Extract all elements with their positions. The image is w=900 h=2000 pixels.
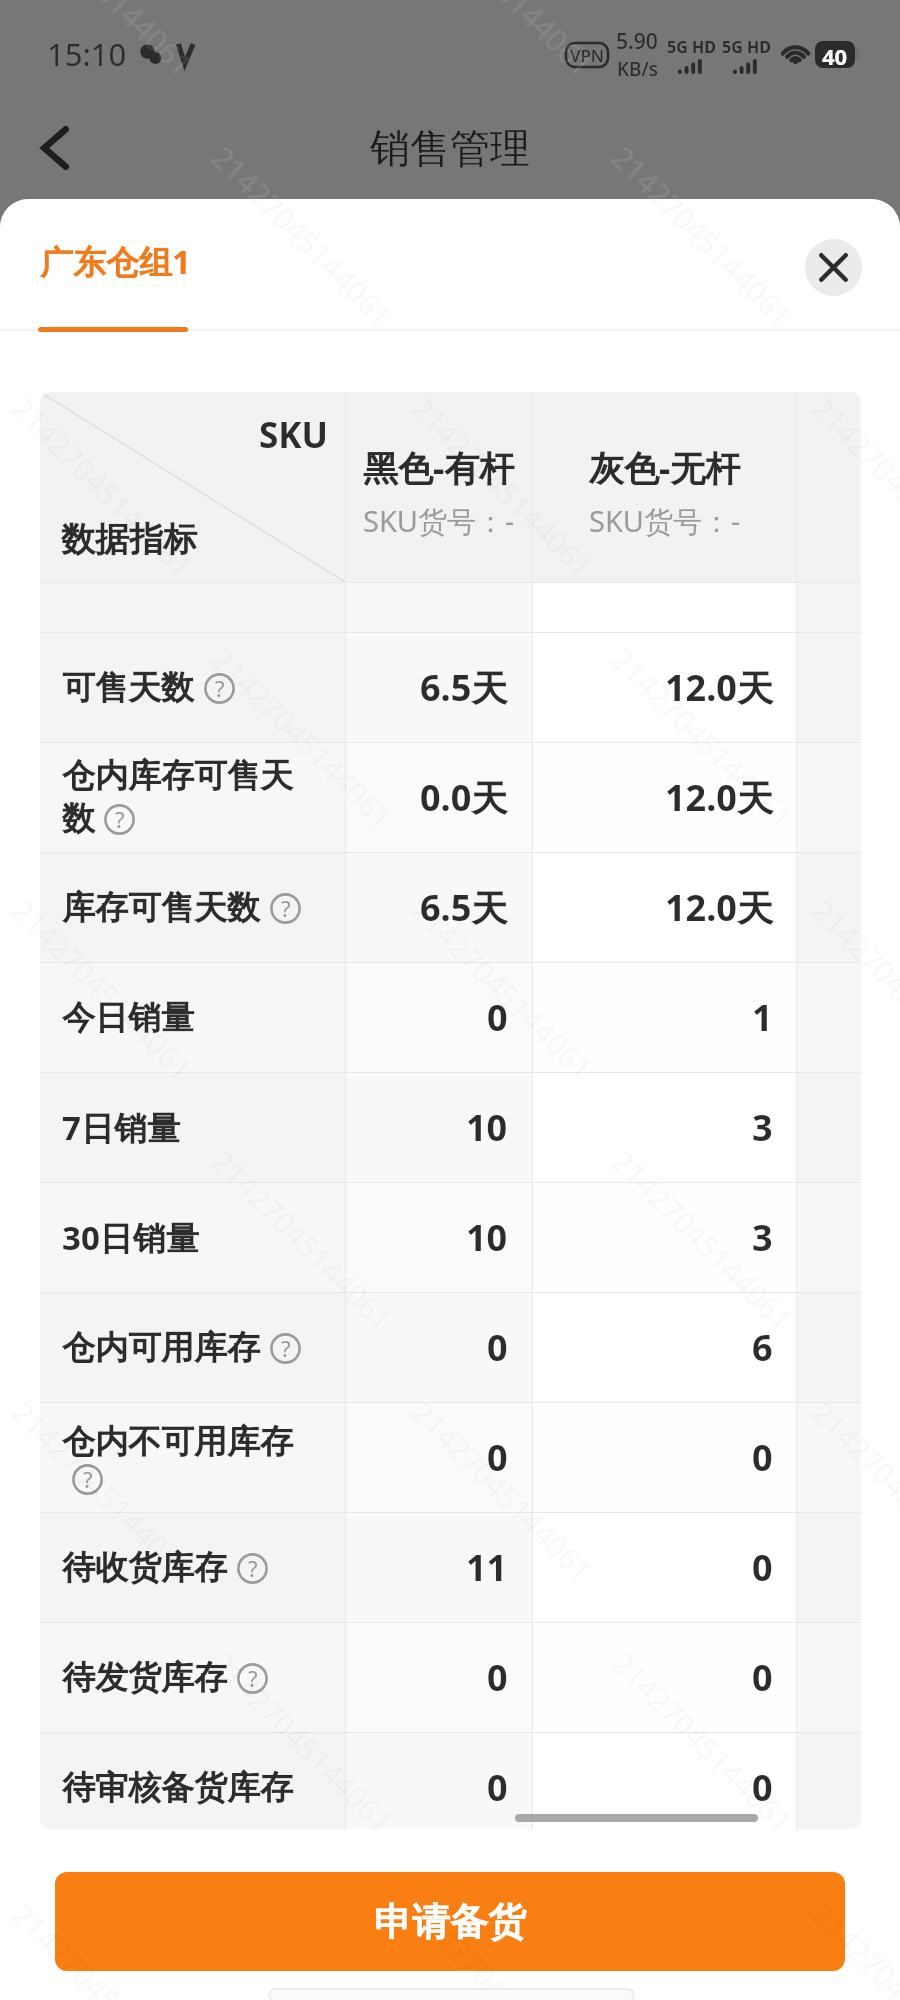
staticText: 待审核备货库存 xyxy=(62,1767,293,1809)
staticText: 7日销量 xyxy=(62,1105,180,1150)
staticText: 今日销量 xyxy=(62,997,194,1039)
staticText: 仓内可用库存 xyxy=(62,1327,260,1369)
staticText: 可售天数 xyxy=(62,667,194,709)
button[interactable]: Back xyxy=(19,112,91,184)
staticText: 40 xyxy=(822,41,848,68)
staticText: 12.0天 xyxy=(665,883,773,932)
staticText: 0 xyxy=(487,1763,508,1812)
staticText: 6.5天 xyxy=(420,663,508,712)
staticText: 0 xyxy=(487,993,508,1042)
staticText: 0 xyxy=(752,1763,773,1812)
staticText: ? xyxy=(215,673,225,703)
staticText: KB/s xyxy=(617,56,658,82)
button[interactable]: 广东仓组1 xyxy=(14,207,212,333)
staticText: 12.0天 xyxy=(665,663,773,712)
staticText: 10 xyxy=(466,1213,508,1262)
staticText: 3 xyxy=(752,1213,773,1262)
staticText: ? xyxy=(115,804,125,834)
staticText: 0.0天 xyxy=(420,773,508,822)
staticText: 12.0天 xyxy=(665,773,773,822)
staticText: 0 xyxy=(487,1433,508,1482)
staticText: 6 xyxy=(752,1323,773,1372)
staticText: 1 xyxy=(752,993,773,1042)
staticText: 销售管理 xyxy=(370,123,530,173)
staticText: 灰色-无杆 xyxy=(589,444,741,492)
staticText: 数 xyxy=(62,798,95,840)
staticText: 广东仓组1 xyxy=(40,239,191,284)
staticText: VPN xyxy=(570,44,605,67)
staticText: 库存可售天数 xyxy=(62,887,260,929)
staticText: 待发货库存 xyxy=(62,1657,227,1699)
staticText: 仓内不可用库存 xyxy=(62,1421,293,1463)
staticText: SKU货号：- xyxy=(589,501,741,541)
staticText: ? xyxy=(248,1553,258,1583)
staticText: 10 xyxy=(466,1103,508,1152)
button[interactable]: 申请备货 xyxy=(55,1872,845,1971)
staticText: 5G HD xyxy=(667,36,716,58)
staticText: 30日销量 xyxy=(62,1215,199,1260)
staticText: 0 xyxy=(752,1433,773,1482)
staticText: SKU货号：- xyxy=(363,501,515,541)
staticText: 黑色-有杆 xyxy=(363,444,515,492)
staticText: SKU xyxy=(259,411,328,459)
staticText: 申请备货 xyxy=(374,1898,526,1946)
button[interactable]: Close xyxy=(805,239,862,296)
staticText: 仓内库存可售天 xyxy=(62,755,293,797)
staticText: ? xyxy=(248,1663,258,1693)
staticText: 数据指标 xyxy=(61,518,197,561)
staticText: 0 xyxy=(752,1653,773,1702)
staticText: 6.5天 xyxy=(420,883,508,932)
staticText: 0 xyxy=(487,1323,508,1372)
staticText: 15:10 xyxy=(47,33,127,75)
staticText: 0 xyxy=(487,1653,508,1702)
staticText: ? xyxy=(83,1464,93,1494)
staticText: 0 xyxy=(752,1543,773,1592)
staticText: ? xyxy=(281,1333,291,1363)
staticText: 3 xyxy=(752,1103,773,1152)
staticText: 5G HD xyxy=(722,36,771,58)
staticText: ? xyxy=(281,893,291,923)
staticText: 11 xyxy=(466,1543,508,1592)
staticText: 待收货库存 xyxy=(62,1547,227,1589)
staticText: 5.90 xyxy=(616,27,658,56)
